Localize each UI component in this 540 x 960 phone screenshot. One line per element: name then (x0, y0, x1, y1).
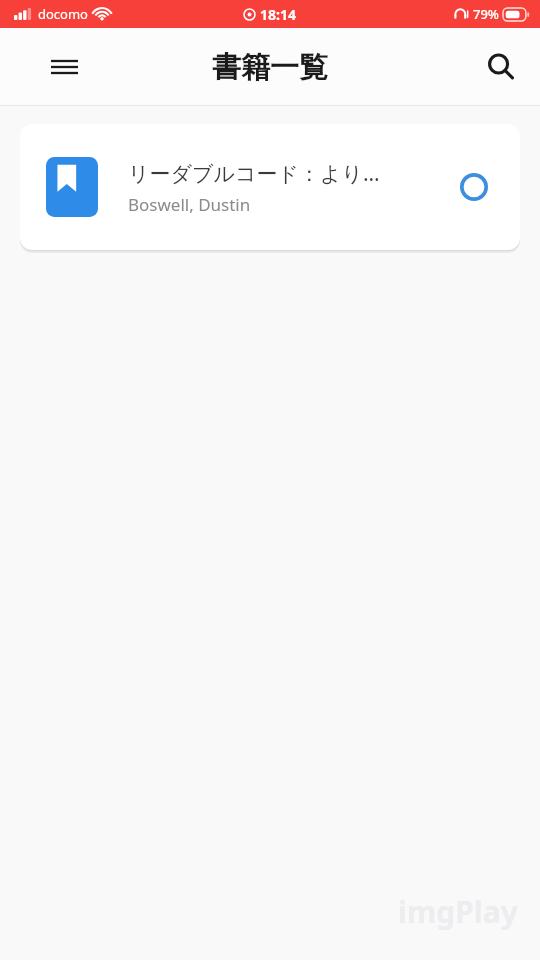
button[interactable]: Search (474, 40, 528, 94)
staticText: 18:14 (260, 5, 296, 24)
staticText: リーダブルコード：より… (128, 159, 380, 188)
button[interactable]: Toggle read status (454, 167, 494, 207)
staticText: 書籍一覧 (212, 49, 328, 86)
button[interactable]: Menu (40, 43, 88, 91)
staticText: docomo (38, 5, 88, 23)
staticText: 79% (473, 5, 499, 23)
staticText: Boswell, Dustin (128, 193, 251, 216)
button[interactable]: リーダブルコード：より… (20, 124, 520, 250)
staticText: imgPlay (398, 891, 518, 932)
